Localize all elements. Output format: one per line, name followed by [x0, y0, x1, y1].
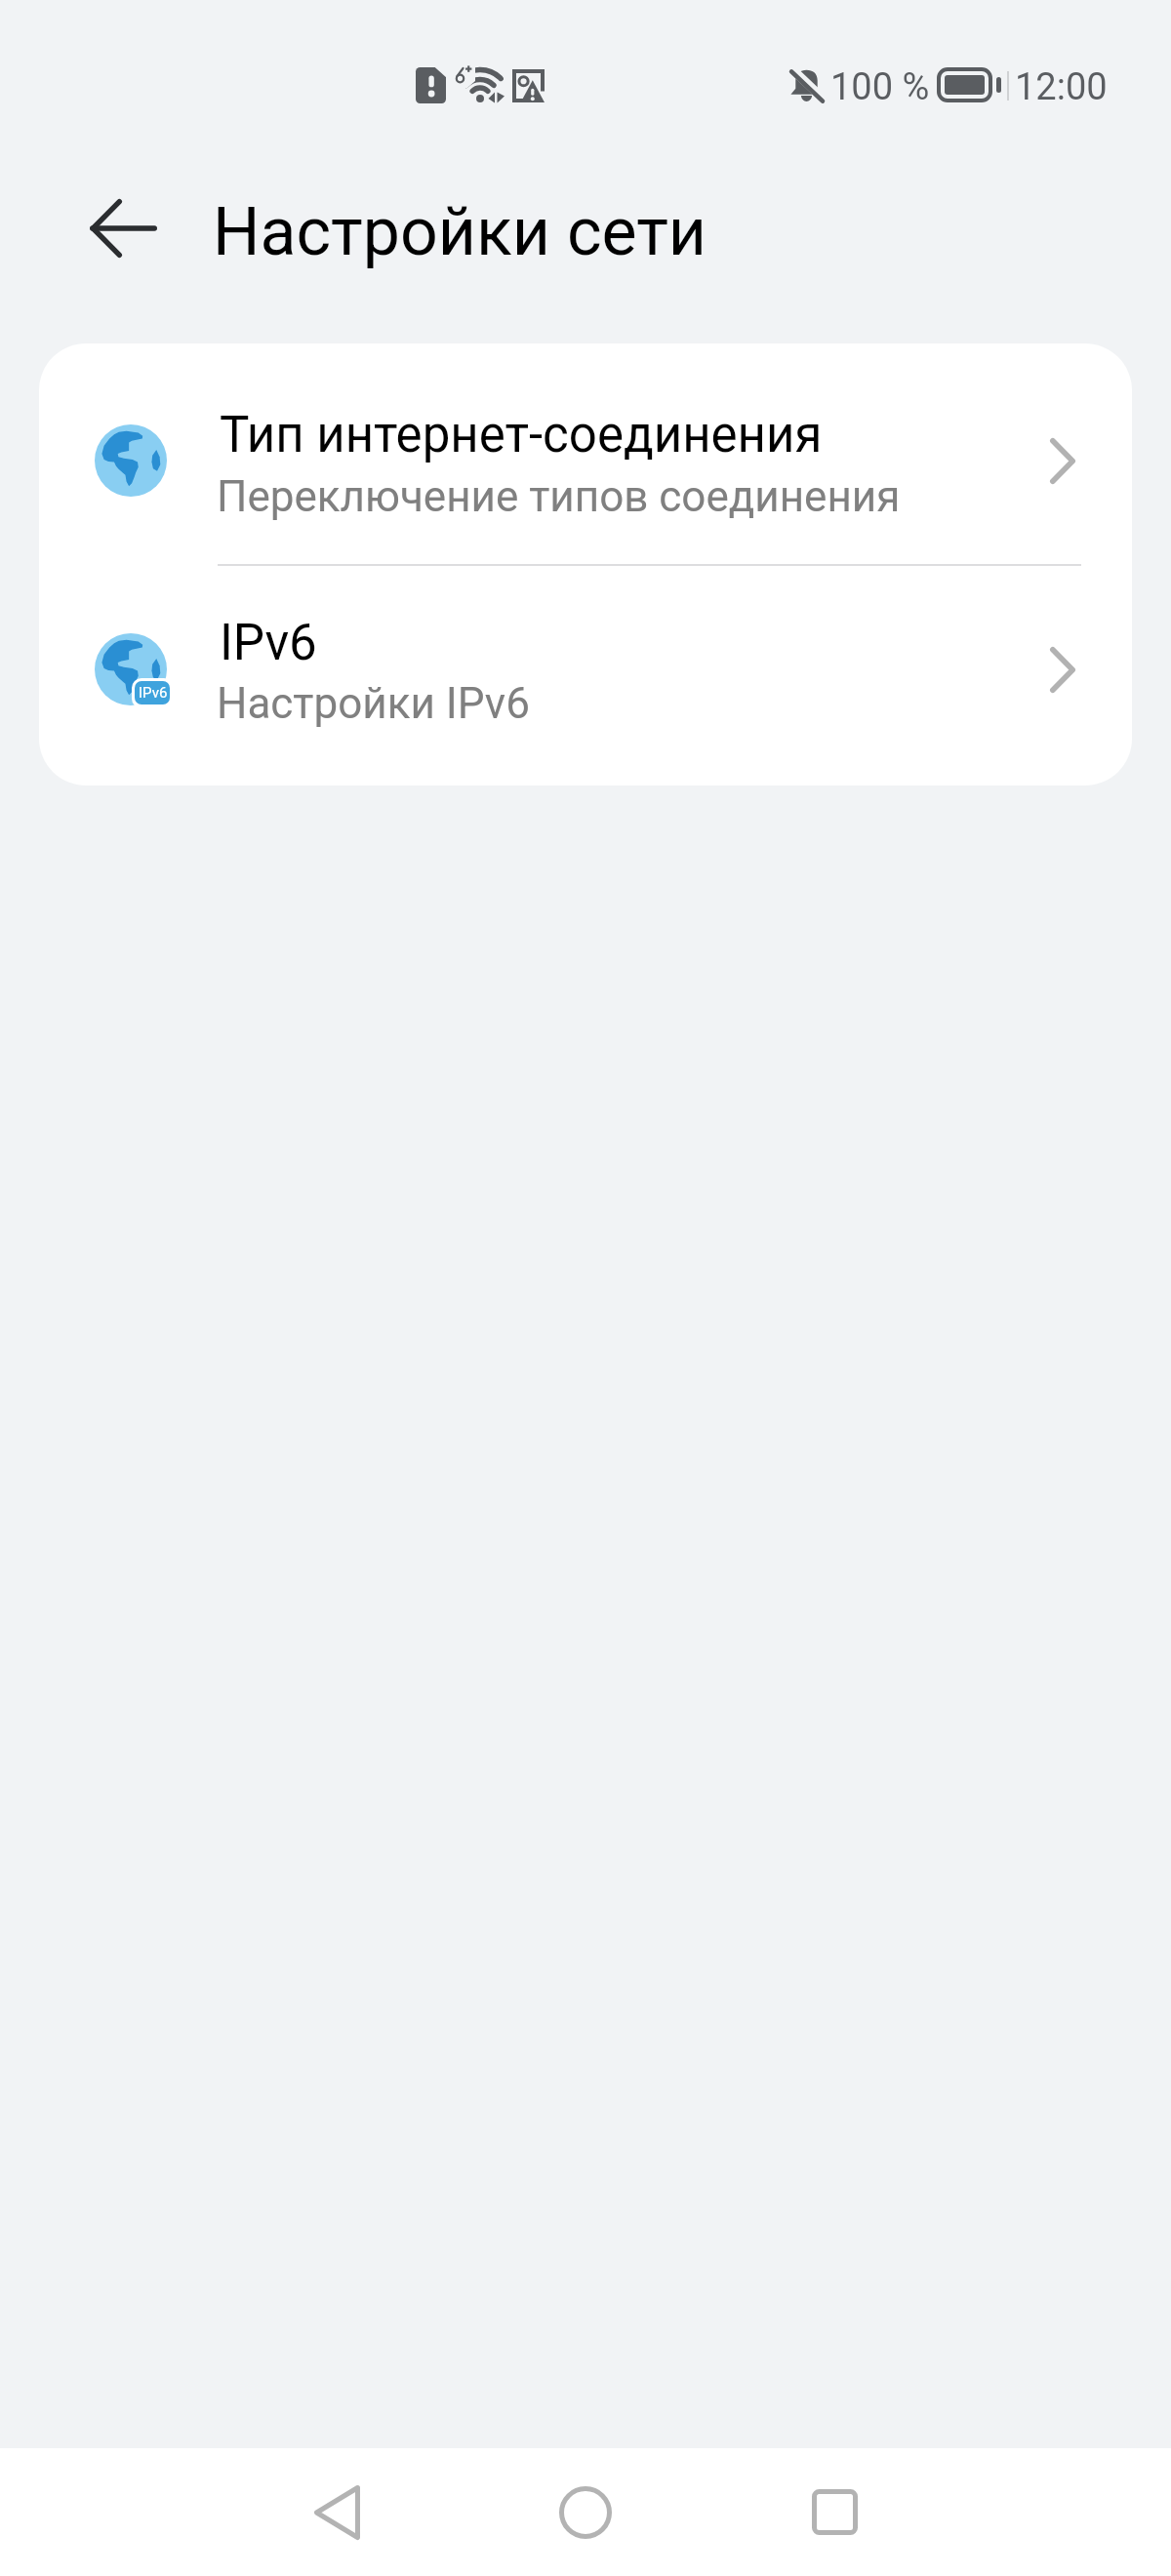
button[interactable]: Back	[68, 174, 178, 283]
staticText: 12:00	[1015, 65, 1108, 109]
staticText: IPv6	[220, 614, 317, 672]
staticText: Тип интернет-соединения	[220, 406, 823, 464]
staticText: IPv6	[139, 684, 168, 702]
staticText: Настройки IPv6	[217, 678, 530, 729]
button[interactable]: Home	[468, 2448, 703, 2576]
button[interactable]: Тип интернет-соединения	[39, 343, 1132, 564]
button[interactable]: Recent apps	[717, 2448, 951, 2576]
staticText: Переключение типов соединения	[217, 471, 901, 522]
button[interactable]: IPv6	[39, 564, 1132, 785]
button[interactable]: Back	[220, 2448, 454, 2576]
staticText: Настройки сети	[213, 193, 707, 271]
staticText: 100 %	[830, 65, 930, 109]
